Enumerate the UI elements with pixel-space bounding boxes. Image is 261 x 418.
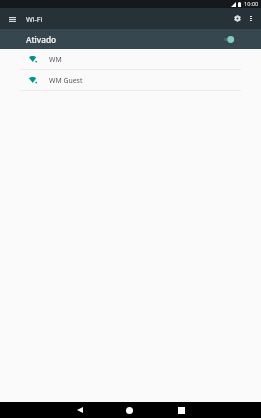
button[interactable]: Recent apps	[171, 402, 191, 418]
button[interactable]: Back	[70, 402, 90, 418]
button[interactable]: Navigation menu	[5, 12, 19, 26]
staticText: WM	[49, 55, 62, 64]
staticText: Wi-Fi	[26, 14, 43, 24]
staticText: 10:00	[244, 0, 259, 8]
staticText: WM Guest	[49, 76, 83, 85]
button[interactable]: Wi-Fi on/off toggle	[221, 33, 237, 45]
button[interactable]: Settings	[230, 11, 245, 26]
button[interactable]: Ativado	[0, 29, 261, 49]
staticText: Ativado	[26, 34, 57, 45]
button[interactable]: WM Guest	[0, 70, 261, 90]
button[interactable]: Home	[119, 402, 139, 418]
button[interactable]: More options	[243, 11, 259, 27]
button[interactable]: WM	[0, 49, 261, 69]
